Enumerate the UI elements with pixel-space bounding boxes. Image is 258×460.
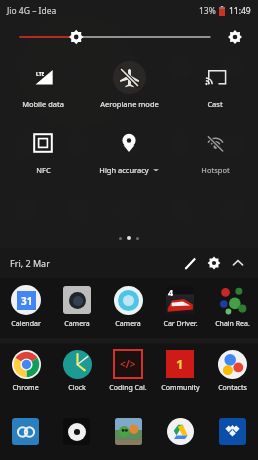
staticText: </> — [120, 357, 136, 371]
button[interactable]: Aeroplane mode — [86, 56, 172, 114]
button[interactable] — [18, 24, 212, 50]
staticText: Car Driver. — [163, 319, 198, 329]
button[interactable]: Game — [102, 414, 154, 448]
button[interactable]: Edit — [178, 251, 202, 275]
staticText: High accuracy — [99, 165, 149, 175]
staticText: 11:49 — [229, 5, 251, 17]
staticText: Coding Cal. — [109, 383, 147, 393]
staticText: Camera — [64, 319, 90, 329]
button[interactable]: Clock — [51, 348, 102, 400]
staticText: 4 — [168, 286, 174, 298]
button[interactable]: High accuracy — [86, 122, 172, 180]
staticText: Clock — [68, 383, 86, 393]
button[interactable]: LTE — [0, 56, 86, 114]
button[interactable]: Dropbox — [206, 414, 258, 448]
staticText: 13% — [199, 5, 216, 17]
button[interactable]: Chain Rea. — [206, 284, 258, 336]
button[interactable]: Contacts — [206, 348, 258, 400]
button[interactable]: Collapse — [226, 251, 250, 275]
button[interactable]: Settings — [202, 251, 226, 275]
button[interactable]: Camera — [51, 284, 102, 336]
staticText: Chain Rea. — [215, 319, 250, 329]
button[interactable]: Chrome — [0, 348, 51, 400]
button[interactable]: Infinity app — [0, 414, 51, 448]
staticText: Hotspot — [201, 165, 230, 175]
button[interactable]: 1 — [154, 348, 206, 400]
button[interactable]: Settings — [222, 24, 248, 50]
button[interactable]: 4 — [154, 284, 206, 336]
staticText: NFC — [36, 165, 51, 175]
staticText: Jio 4G – Idea — [7, 5, 57, 17]
staticText: 31 — [21, 294, 33, 308]
staticText: Aeroplane mode — [100, 99, 159, 109]
staticText: 1 — [176, 355, 184, 373]
staticText: Calendar — [11, 319, 41, 329]
button[interactable]: NFC — [0, 122, 86, 180]
button[interactable]: Cast — [172, 56, 258, 114]
staticText: Community — [161, 383, 200, 393]
staticText: Fri, 2 Mar — [10, 257, 50, 269]
staticText: Contacts — [218, 383, 247, 393]
button[interactable]: Music — [51, 414, 102, 448]
staticText: Cast — [207, 99, 223, 109]
button[interactable]: </> — [102, 348, 154, 400]
button[interactable]: 31 — [0, 284, 51, 336]
staticText: LTE — [36, 71, 45, 78]
button[interactable]: Google Drive — [154, 414, 206, 448]
button[interactable]: Camera — [102, 284, 154, 336]
staticText: Chrome — [12, 383, 39, 393]
staticText: Mobile data — [22, 99, 64, 109]
staticText: Camera — [115, 319, 141, 329]
button[interactable]: Hotspot — [172, 122, 258, 180]
